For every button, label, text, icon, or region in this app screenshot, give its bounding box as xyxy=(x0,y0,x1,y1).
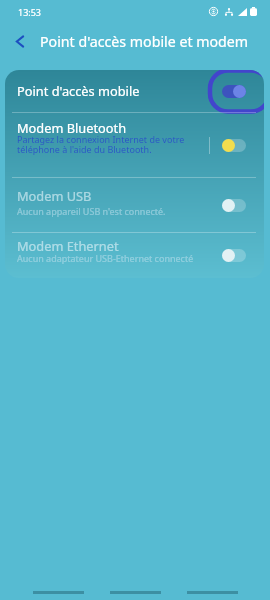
staticText: Modem Ethernet xyxy=(17,237,119,254)
staticText: Point d'accès mobile et modem xyxy=(40,32,249,51)
button[interactable]: Modem Ethernet xyxy=(5,233,264,278)
button[interactable]: Toggle Modem USB xyxy=(210,178,264,232)
button[interactable]: Modem USB xyxy=(5,178,264,232)
button[interactable]: Modem Bluetooth xyxy=(5,113,264,177)
staticText: Aucun appareil USB n'est connecté. xyxy=(17,205,166,217)
staticText: Partagez la connexion Internet de votre … xyxy=(17,133,185,155)
button[interactable]: Point d'accès mobile xyxy=(5,70,264,112)
button[interactable]: Back xyxy=(0,27,40,55)
staticText: Point d'accès mobile xyxy=(17,82,140,99)
button[interactable]: Toggle Modem Ethernet xyxy=(210,233,264,278)
staticText: Aucun adaptateur USB-Ethernet connecté xyxy=(17,252,194,264)
staticText: Modem USB xyxy=(17,187,92,204)
button[interactable]: Toggle Modem Bluetooth xyxy=(210,113,264,177)
button[interactable]: Toggle Point d'accès mobile xyxy=(210,70,264,112)
staticText: Modem Bluetooth xyxy=(17,119,127,136)
staticText: 13:53 xyxy=(18,6,42,18)
